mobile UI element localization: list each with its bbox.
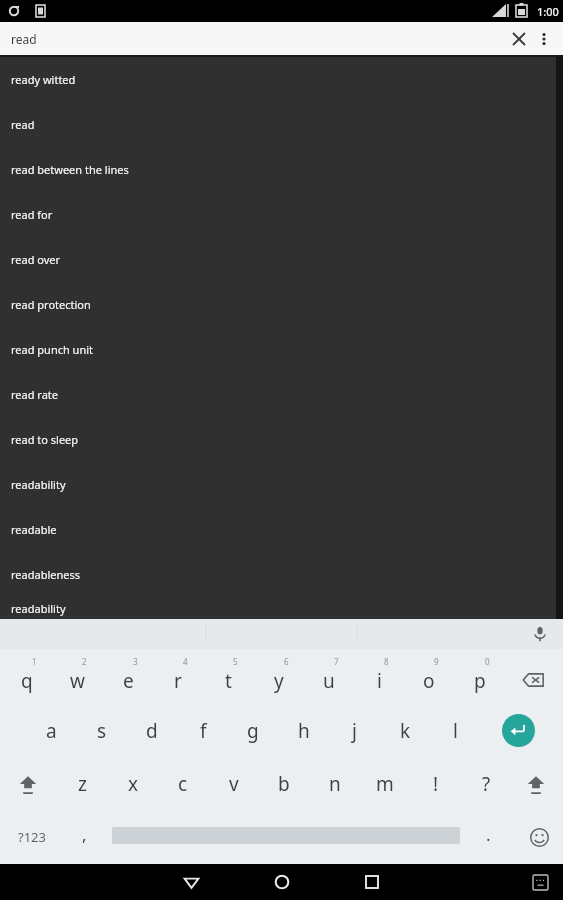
staticText: t [225, 668, 232, 694]
button[interactable]: readability [0, 597, 563, 619]
button[interactable]: 9 [406, 649, 452, 704]
button[interactable]: read between the lines [0, 147, 563, 192]
button[interactable]: Switch keyboard [525, 867, 555, 897]
button[interactable]: Clear query [506, 26, 532, 52]
staticText: s [97, 718, 107, 744]
button[interactable]: ? [463, 757, 509, 810]
button[interactable]: s [79, 704, 125, 757]
button[interactable]: 8 [356, 649, 402, 704]
staticText: l [453, 718, 458, 744]
staticText: read for [11, 207, 53, 222]
button[interactable]: 5 [205, 649, 251, 704]
staticText: read protection [11, 297, 91, 312]
button[interactable]: read [0, 102, 563, 147]
button[interactable]: g [230, 704, 276, 757]
staticText: e [123, 668, 134, 694]
button[interactable]: Shift [6, 757, 50, 810]
staticText: 4 [183, 656, 188, 667]
staticText: a [46, 718, 57, 744]
staticText: 7 [334, 656, 339, 667]
button[interactable]: j [331, 704, 377, 757]
button[interactable]: readableness [0, 552, 563, 597]
staticText: d [146, 718, 158, 744]
button[interactable]: k [382, 704, 428, 757]
staticText: read over [11, 252, 61, 267]
button[interactable]: f [180, 704, 226, 757]
button[interactable]: 3 [105, 649, 151, 704]
staticText: n [329, 771, 341, 797]
staticText: 5 [233, 656, 238, 667]
button[interactable]: l [432, 704, 478, 757]
staticText: 2 [82, 656, 87, 667]
button[interactable]: read over [0, 237, 563, 282]
staticText: read punch unit [11, 342, 94, 357]
button[interactable]: Enter [502, 714, 535, 747]
staticText: read [11, 31, 37, 47]
staticText: readableness [11, 567, 80, 582]
staticText: 0 [485, 656, 490, 667]
button[interactable]: read to sleep [0, 417, 563, 462]
button[interactable]: Shift right [514, 757, 558, 810]
button[interactable]: 2 [54, 649, 100, 704]
staticText: i [377, 668, 382, 694]
button[interactable]: Comma [62, 810, 106, 864]
staticText: read [11, 117, 35, 132]
button[interactable]: x [110, 757, 156, 810]
button[interactable]: b [261, 757, 307, 810]
button[interactable]: read for [0, 192, 563, 237]
button[interactable]: readable [0, 507, 563, 552]
staticText: g [247, 718, 259, 744]
button[interactable]: read punch unit [0, 327, 563, 372]
staticText: z [78, 771, 87, 797]
button[interactable]: Voice input [527, 621, 553, 647]
button[interactable]: Period [468, 810, 508, 864]
button[interactable]: c [160, 757, 206, 810]
button[interactable]: read protection [0, 282, 563, 327]
button[interactable]: read rate [0, 372, 563, 417]
button[interactable]: n [312, 757, 358, 810]
button[interactable]: More options [531, 26, 557, 52]
button[interactable]: Back [172, 864, 210, 900]
staticText: 8 [384, 656, 389, 667]
button[interactable]: 4 [155, 649, 201, 704]
staticText: h [298, 718, 310, 744]
staticText: read rate [11, 387, 58, 402]
staticText: r [174, 668, 182, 694]
staticText: read between the lines [11, 162, 129, 177]
staticText: v [229, 771, 239, 797]
staticText: , [82, 823, 87, 846]
staticText: u [323, 668, 335, 694]
button[interactable]: ?123 [4, 810, 60, 864]
staticText: c [178, 771, 188, 797]
button[interactable]: v [211, 757, 257, 810]
button[interactable]: Home [263, 864, 301, 900]
button[interactable]: ready witted [0, 57, 563, 102]
staticText: 9 [434, 656, 439, 667]
staticText: j [352, 718, 357, 744]
staticText: readability [11, 477, 66, 492]
button[interactable]: a [28, 704, 74, 757]
staticText: w [70, 668, 85, 694]
staticText: p [474, 668, 486, 694]
staticText: readability [11, 601, 66, 616]
button[interactable]: Backspace [508, 649, 558, 704]
button[interactable]: m [362, 757, 408, 810]
button[interactable]: h [281, 704, 327, 757]
button[interactable]: 6 [256, 649, 302, 704]
button[interactable]: ! [413, 757, 459, 810]
button[interactable]: Emoji [518, 810, 560, 864]
button[interactable]: z [59, 757, 105, 810]
button[interactable]: readability [0, 462, 563, 507]
staticText: m [376, 771, 394, 797]
button[interactable]: Recent apps [353, 864, 391, 900]
staticText: ?123 [18, 828, 46, 846]
staticText: x [128, 771, 139, 797]
button[interactable]: read [0, 22, 563, 55]
staticText: ! [433, 771, 439, 797]
button[interactable]: d [129, 704, 175, 757]
button[interactable]: 1 [4, 649, 50, 704]
button[interactable]: 7 [306, 649, 352, 704]
staticText: 3 [133, 656, 138, 667]
button[interactable]: 0 [457, 649, 503, 704]
